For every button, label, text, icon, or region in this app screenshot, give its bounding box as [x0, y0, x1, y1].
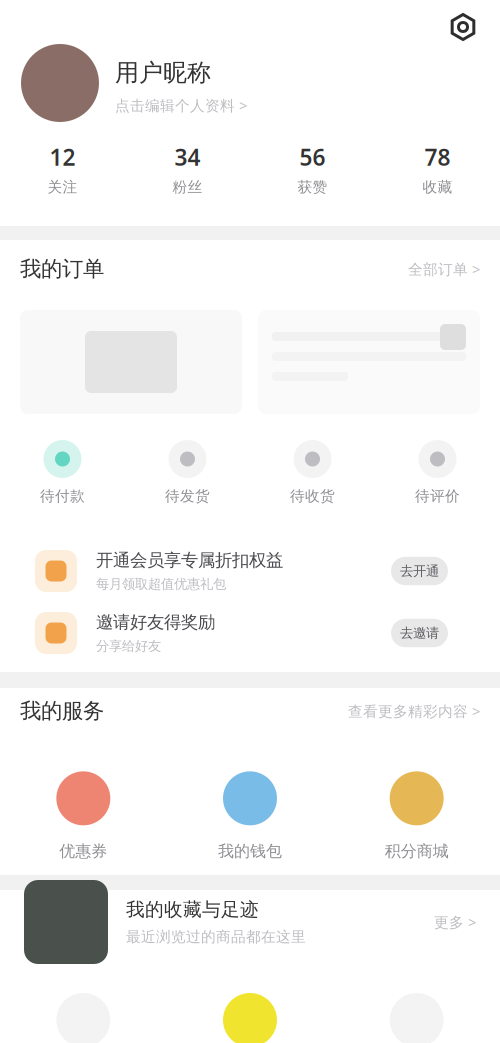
staticText: 优惠券 — [59, 841, 107, 861]
staticText: 更多 > — [434, 912, 476, 932]
button[interactable]: 待收货 — [250, 440, 375, 505]
staticText: 我的订单 — [20, 256, 104, 282]
button[interactable]: 开通会员享专属折扣权益 — [0, 540, 500, 602]
staticText: 用户昵称 — [115, 58, 211, 87]
button[interactable]: 我的服务 — [0, 692, 500, 730]
staticText: 去邀请 — [400, 625, 439, 641]
button[interactable]: 34 — [125, 138, 250, 200]
staticText: 积分商城 — [385, 841, 449, 861]
staticText: 待收货 — [290, 487, 335, 505]
staticText: 34 — [174, 142, 200, 172]
button[interactable]: 我的钱包 — [167, 771, 333, 861]
staticText: 分享给好友 — [96, 638, 161, 654]
staticText: 12 — [49, 142, 75, 172]
button[interactable] — [333, 993, 500, 1043]
button[interactable]: 我的收藏与足迹 — [0, 877, 500, 967]
button[interactable]: 设置 — [441, 5, 485, 49]
button[interactable] — [167, 993, 333, 1043]
staticText: 获赞 — [297, 178, 327, 196]
staticText: 点击编辑个人资料 > — [115, 95, 247, 115]
staticText: 收藏 — [422, 178, 452, 196]
staticText: 我的钱包 — [218, 841, 282, 861]
button[interactable]: 邀请好友得奖励 — [0, 602, 500, 664]
button[interactable]: 积分商城 — [333, 771, 500, 861]
staticText: 56 — [299, 142, 325, 172]
staticText: 关注 — [47, 178, 77, 196]
staticText: 去开通 — [400, 563, 439, 579]
staticText: 每月领取超值优惠礼包 — [96, 576, 226, 592]
button[interactable]: 78 — [375, 138, 500, 200]
staticText: 查看更多精彩内容 > — [348, 701, 480, 721]
staticText: 粉丝 — [172, 178, 202, 196]
button[interactable]: 56 — [250, 138, 375, 200]
button[interactable]: 优惠券 — [0, 771, 167, 861]
button[interactable]: 我的订单 — [0, 250, 500, 288]
staticText: 我的服务 — [20, 698, 104, 724]
staticText: 待付款 — [40, 487, 85, 505]
button[interactable]: 头像 — [21, 44, 99, 122]
staticText: 待评价 — [415, 487, 460, 505]
button[interactable] — [0, 993, 167, 1043]
staticText: 我的收藏与足迹 — [126, 898, 259, 921]
button[interactable]: 用户昵称 — [115, 44, 247, 115]
staticText: 全部订单 > — [408, 259, 480, 279]
staticText: 开通会员享专属折扣权益 — [96, 550, 283, 571]
staticText: 待发货 — [165, 487, 210, 505]
button[interactable]: 待评价 — [375, 440, 500, 505]
button[interactable]: 12 — [0, 138, 125, 200]
staticText: 78 — [424, 142, 450, 172]
staticText: 邀请好友得奖励 — [96, 612, 215, 633]
button[interactable]: 待发货 — [125, 440, 250, 505]
button[interactable]: 待付款 — [0, 440, 125, 505]
staticText: 最近浏览过的商品都在这里 — [126, 928, 306, 946]
